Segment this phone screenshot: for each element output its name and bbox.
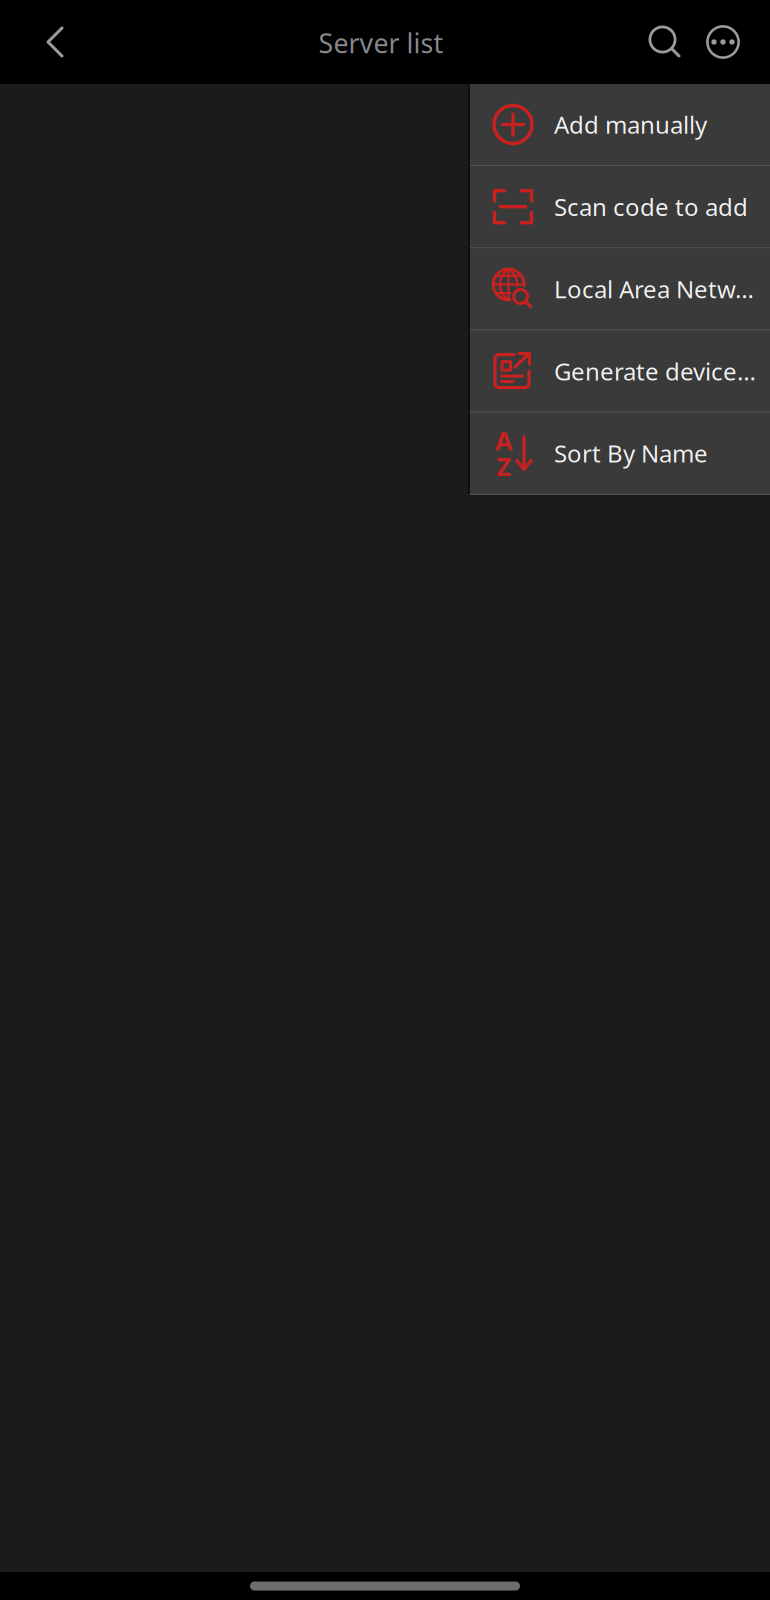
- staticText: Z: [496, 449, 511, 483]
- staticText: A: [495, 424, 513, 457]
- button[interactable]: Back: [24, 10, 86, 74]
- staticText: Add manually: [554, 109, 707, 140]
- button[interactable]: Scan code to add: [470, 166, 770, 247]
- button[interactable]: More options: [694, 12, 752, 72]
- button[interactable]: Add manually: [470, 84, 770, 165]
- button[interactable]: Search: [636, 12, 694, 72]
- staticText: Local Area Netw…: [554, 273, 754, 305]
- staticText: Scan code to add: [554, 191, 748, 223]
- button[interactable]: Generate device…: [470, 331, 770, 412]
- staticText: Server list: [318, 25, 443, 61]
- button[interactable]: A: [470, 413, 770, 494]
- button[interactable]: Local Area Netw…: [470, 248, 770, 329]
- staticText: Generate device…: [554, 355, 756, 387]
- staticText: Sort By Name: [554, 437, 708, 469]
